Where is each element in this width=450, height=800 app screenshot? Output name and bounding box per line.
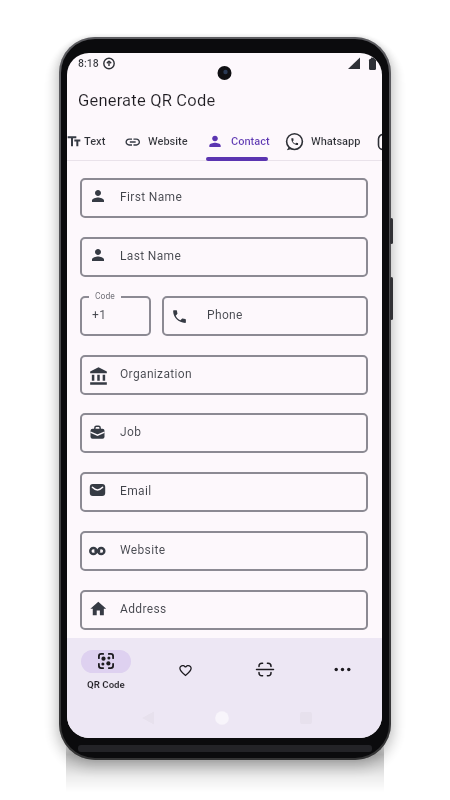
button[interactable] [67, 643, 146, 698]
button[interactable] [146, 643, 225, 698]
button[interactable]: Website [80, 531, 368, 571]
button[interactable] [225, 643, 304, 698]
staticText: First Name [120, 190, 183, 204]
staticText: Contact [231, 135, 270, 148]
staticText: Organization [120, 367, 193, 381]
staticText: Code [95, 291, 115, 301]
button[interactable]: Organization [80, 355, 368, 395]
staticText: 8:18 [78, 57, 99, 69]
staticText: Email [120, 484, 152, 498]
button[interactable]: Contact [206, 128, 268, 158]
button[interactable]: Text [67, 128, 123, 158]
staticText: Whatsapp [311, 135, 361, 148]
staticText: Last Name [120, 249, 182, 263]
button[interactable]: First Name [80, 178, 368, 218]
staticText: Job [120, 425, 142, 439]
button[interactable]: Address [80, 590, 368, 630]
staticText: Text [84, 135, 106, 148]
button[interactable]: Job [80, 413, 368, 453]
button[interactable]: Whatsapp [286, 128, 359, 158]
button[interactable]: Phone [162, 296, 368, 336]
button[interactable]: Last Name [80, 237, 368, 277]
button[interactable] [304, 643, 382, 698]
button[interactable]: +1 [80, 296, 151, 336]
staticText: Address [120, 602, 167, 616]
staticText: Phone [207, 308, 243, 322]
button[interactable]: Website [125, 128, 189, 158]
staticText: Website [148, 135, 188, 148]
button[interactable] [207, 703, 237, 733]
staticText: Generate QR Code [78, 91, 216, 110]
staticText: Website [120, 543, 166, 557]
button[interactable]: Email [80, 472, 368, 512]
staticText: +1 [92, 308, 107, 322]
staticText: QR Code [87, 679, 125, 690]
